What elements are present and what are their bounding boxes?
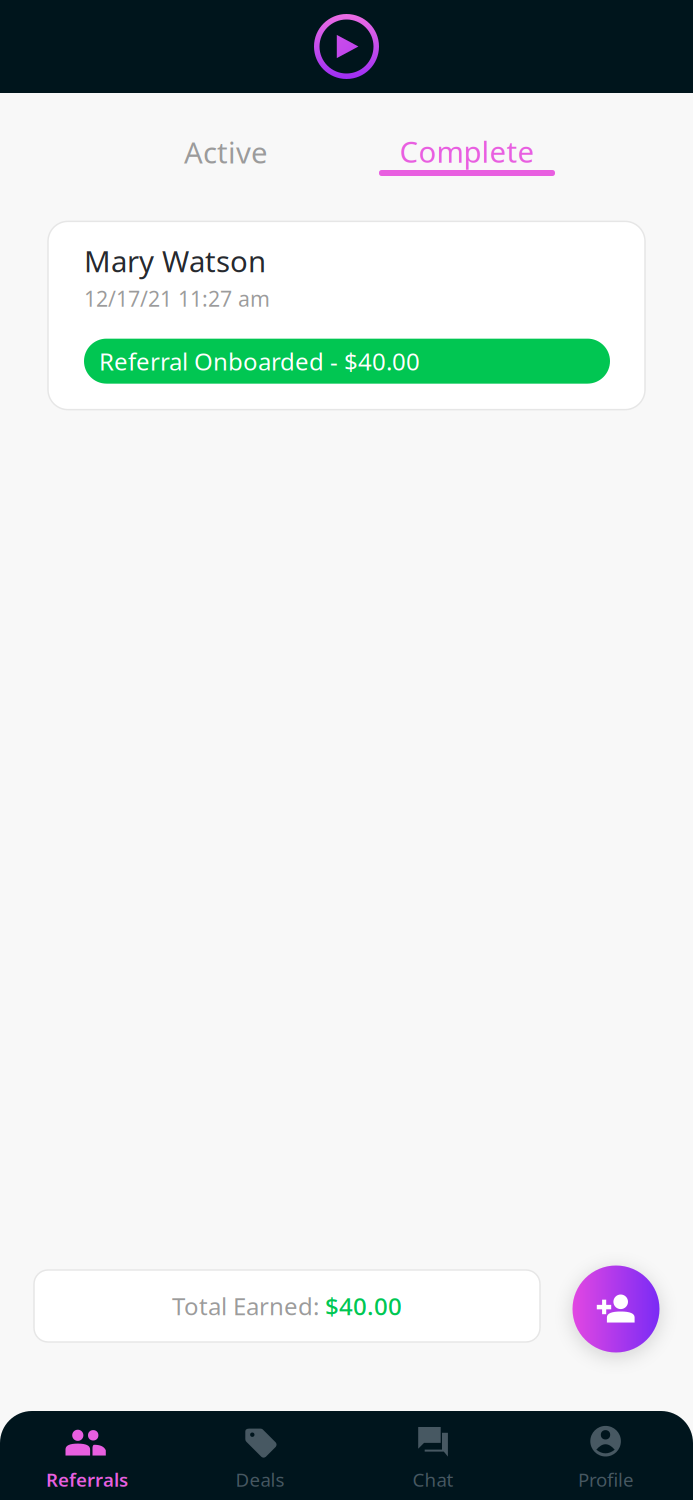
button[interactable]: Mary Watson bbox=[48, 221, 645, 410]
button[interactable]: Complete bbox=[367, 132, 567, 190]
staticText: Chat bbox=[412, 1467, 453, 1492]
button[interactable]: Deals bbox=[173, 1411, 346, 1500]
button[interactable]: Active bbox=[136, 123, 316, 181]
staticText: Deals bbox=[235, 1467, 284, 1492]
staticText: 12/17/21 11:27 am bbox=[84, 284, 270, 313]
button[interactable]: Referrals bbox=[0, 1411, 173, 1500]
staticText: Referral Onboarded - $40.00 bbox=[99, 345, 420, 377]
staticText: Mary Watson bbox=[84, 241, 266, 280]
staticText: Total Earned: bbox=[172, 1290, 325, 1322]
staticText: Active bbox=[184, 132, 268, 171]
button[interactable]: Add referral bbox=[572, 1265, 659, 1352]
button[interactable]: Profile bbox=[519, 1411, 692, 1500]
button[interactable]: Chat bbox=[346, 1411, 519, 1500]
staticText: $40.00 bbox=[325, 1290, 402, 1322]
staticText: Complete bbox=[399, 132, 534, 171]
staticText: Profile bbox=[578, 1467, 634, 1492]
staticText: Referrals bbox=[46, 1467, 128, 1492]
